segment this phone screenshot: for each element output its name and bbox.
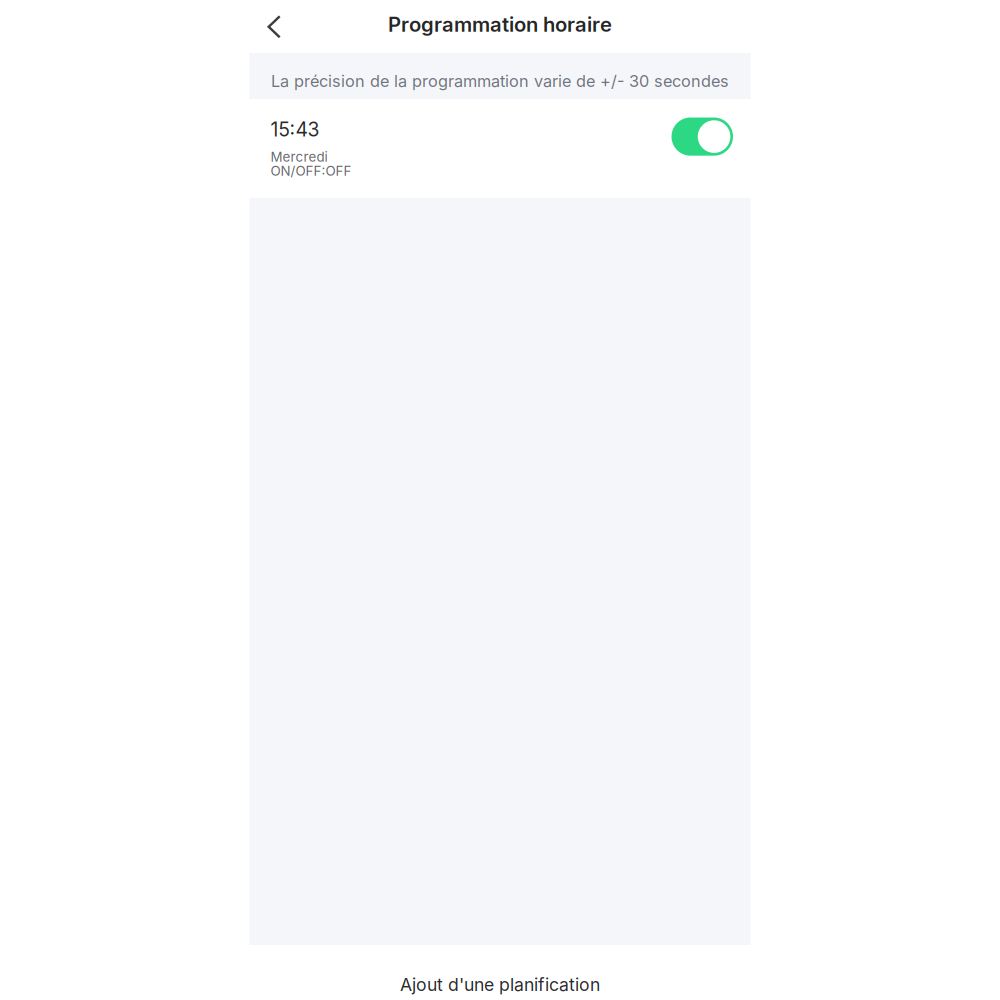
button[interactable]: Back	[249, 0, 297, 53]
button[interactable]: 15:43	[249, 99, 750, 198]
staticText: La précision de la programmation varie d…	[271, 71, 729, 91]
button[interactable]: Schedule enabled	[671, 117, 733, 156]
staticText: Mercredi	[270, 149, 327, 165]
staticText: ON/OFF:OFF	[270, 163, 351, 179]
staticText: Ajout d'une planification	[400, 974, 600, 995]
button[interactable]: Ajout d'une planification	[249, 945, 750, 1000]
staticText: Programmation horaire	[388, 12, 612, 37]
staticText: 15:43	[270, 118, 319, 141]
